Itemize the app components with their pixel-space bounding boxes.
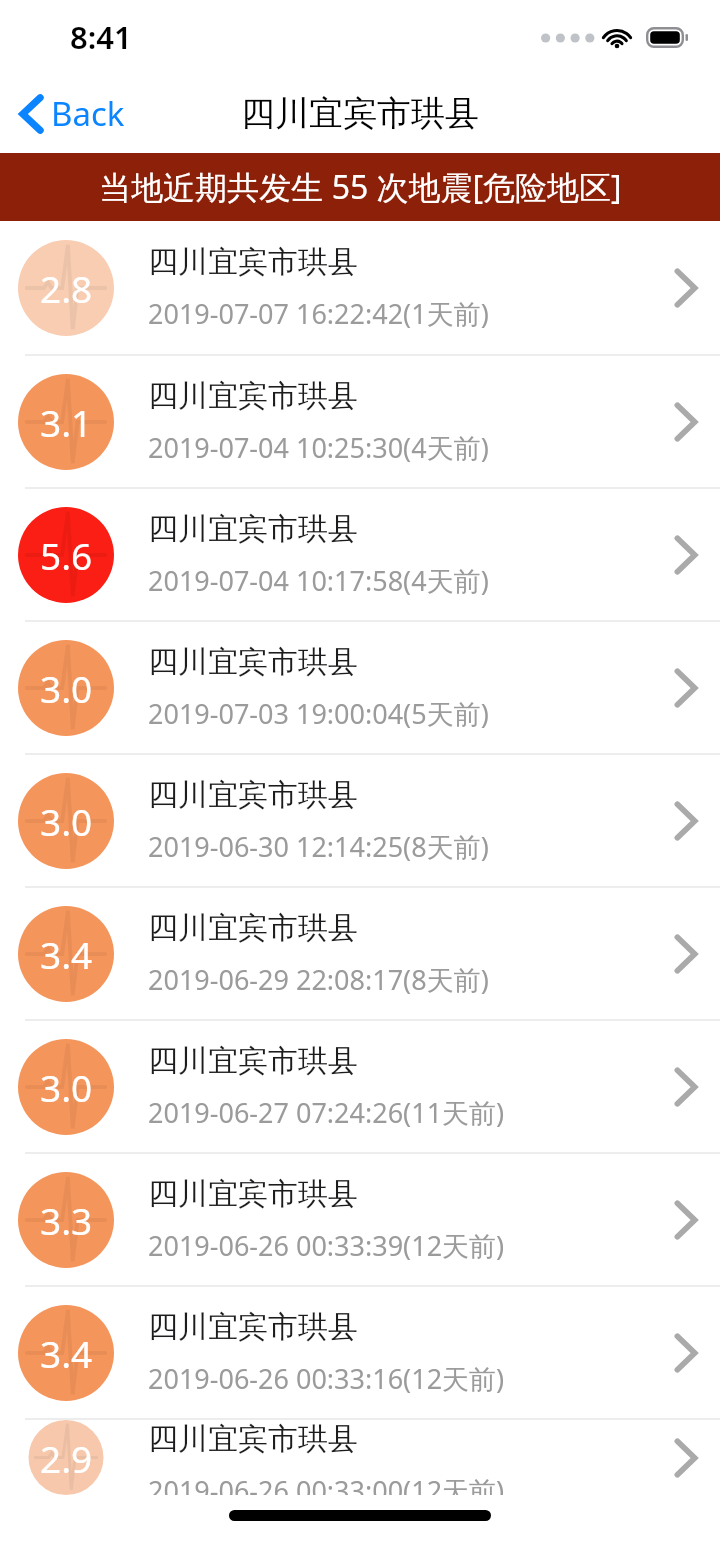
button[interactable]: 5.6 — [0, 489, 720, 620]
staticText: 四川宜宾市珙县 — [148, 1308, 358, 1346]
button[interactable]: 3.1 — [0, 356, 720, 487]
button[interactable]: 3.4 — [0, 888, 720, 1019]
staticText: 当地近期共发生 55 次地震[危险地区] — [99, 165, 622, 209]
other: 查看地震详情 — [672, 400, 699, 444]
staticText: 四川宜宾市珙县 — [148, 377, 358, 415]
other: 查看地震详情 — [672, 1436, 699, 1480]
staticText: 3.1 — [40, 397, 93, 447]
staticText: 2019-06-30 12:14:25(8天前) — [148, 828, 489, 865]
staticText: 四川宜宾市珙县 — [148, 1175, 358, 1213]
staticText: 四川宜宾市珙县 — [148, 909, 358, 947]
staticText: 四川宜宾市珙县 — [148, 510, 358, 548]
staticText: 2.9 — [40, 1433, 93, 1483]
staticText: 8:41 — [70, 16, 132, 58]
staticText: 四川宜宾市珙县 — [148, 1420, 358, 1458]
other: 查看地震详情 — [672, 266, 699, 310]
staticText: 2019-06-27 07:24:26(11天前) — [148, 1094, 505, 1131]
staticText: 四川宜宾市珙县 — [148, 1042, 358, 1080]
staticText: 2019-06-26 00:33:39(12天前) — [148, 1227, 505, 1264]
staticText: 3.3 — [40, 1195, 93, 1245]
staticText: 2019-07-04 10:17:58(4天前) — [148, 562, 489, 599]
staticText: 3.0 — [40, 1062, 93, 1112]
staticText: 2019-07-04 10:25:30(4天前) — [148, 429, 489, 466]
staticText: 3.0 — [40, 796, 93, 846]
button[interactable]: 3.0 — [0, 1021, 720, 1152]
button[interactable]: 3.3 — [0, 1154, 720, 1285]
staticText: 2.8 — [40, 263, 93, 313]
other: 查看地震详情 — [672, 932, 699, 976]
button[interactable]: Back — [0, 81, 143, 146]
button[interactable]: 3.0 — [0, 755, 720, 886]
staticText: 3.0 — [40, 663, 93, 713]
other: 查看地震详情 — [672, 1331, 699, 1375]
other: 查看地震详情 — [672, 1065, 699, 1109]
other: 查看地震详情 — [672, 799, 699, 843]
staticText: 四川宜宾市珙县 — [148, 776, 358, 814]
staticText: 2019-07-07 16:22:42(1天前) — [148, 295, 489, 332]
staticText: 5.6 — [40, 530, 93, 580]
other: 查看地震详情 — [672, 1198, 699, 1242]
other: 查看地震详情 — [672, 533, 699, 577]
button[interactable]: 2.8 — [0, 221, 720, 354]
staticText: 2019-07-03 19:00:04(5天前) — [148, 695, 489, 732]
staticText: 3.4 — [40, 1328, 93, 1378]
staticText: 2019-06-26 00:33:16(12天前) — [148, 1360, 505, 1397]
staticText: 四川宜宾市珙县 — [148, 643, 358, 681]
staticText: Back — [51, 91, 125, 136]
button[interactable]: 3.0 — [0, 622, 720, 753]
staticText: 2019-06-26 00:33:00(12天前) — [148, 1472, 505, 1495]
button[interactable]: 3.4 — [0, 1287, 720, 1418]
button[interactable]: 2.9 — [0, 1420, 720, 1495]
staticText: 3.4 — [40, 929, 93, 979]
staticText: 四川宜宾市珙县 — [241, 92, 479, 135]
staticText: 2019-06-29 22:08:17(8天前) — [148, 961, 489, 998]
staticText: 四川宜宾市珙县 — [148, 243, 358, 281]
other: 查看地震详情 — [672, 666, 699, 710]
